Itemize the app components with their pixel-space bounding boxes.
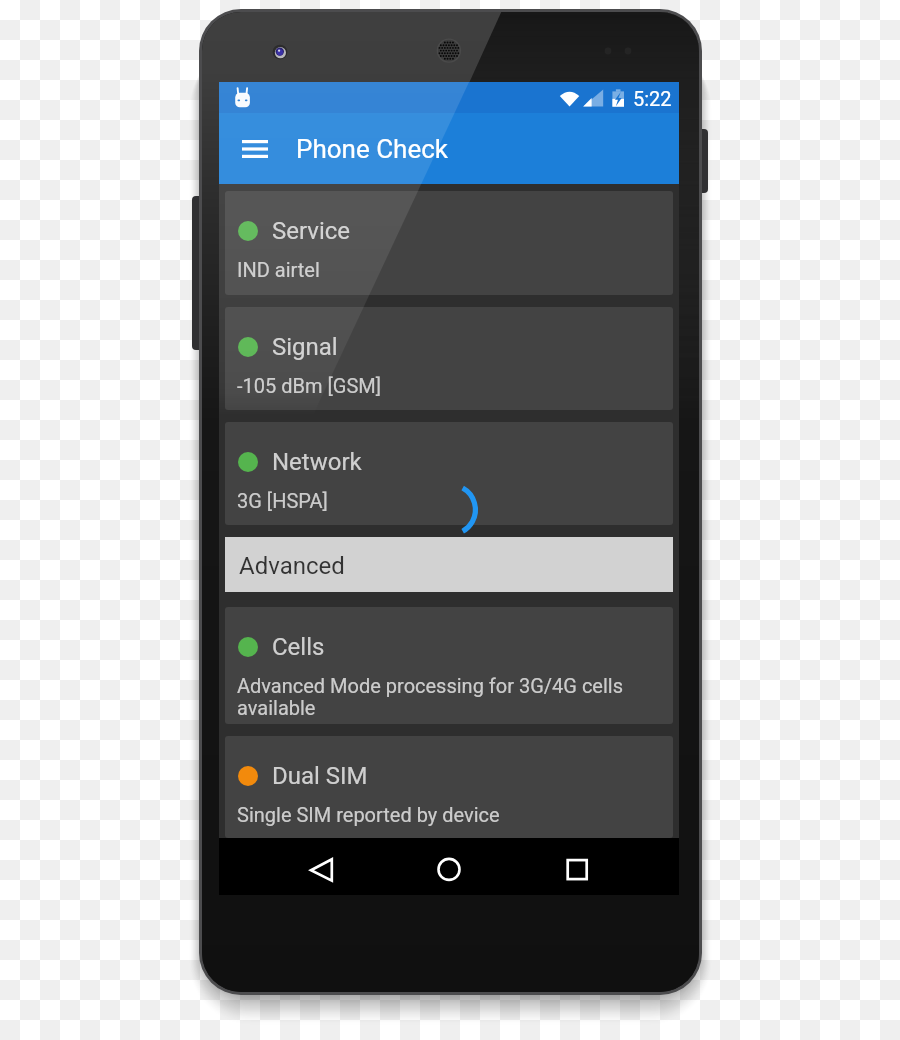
staticText: Phone Check: [296, 134, 448, 164]
staticText: Advanced Mode processing for 3G/4G cells…: [237, 674, 663, 720]
staticText: -105 dBm [GSM]: [237, 374, 663, 397]
button[interactable]: Back: [287, 838, 345, 895]
staticText: 5:22: [633, 87, 672, 110]
staticText: Service: [272, 217, 351, 245]
staticText: Advanced: [239, 552, 345, 580]
staticText: Network: [272, 448, 362, 476]
button[interactable]: Recent apps: [549, 838, 607, 895]
button[interactable]: Home: [419, 838, 477, 895]
button[interactable]: Advanced: [225, 537, 673, 592]
staticText: Signal: [272, 333, 338, 361]
staticText: Cells: [272, 633, 325, 661]
button[interactable]: Signal: [225, 307, 673, 410]
staticText: 3G [HSPA]: [237, 489, 663, 512]
staticText: Dual SIM: [272, 762, 368, 790]
staticText: IND airtel: [237, 258, 663, 281]
staticText: Single SIM reported by device: [237, 803, 663, 826]
button[interactable]: Open navigation menu: [232, 126, 278, 172]
button[interactable]: Service: [225, 191, 673, 295]
button[interactable]: Network: [225, 422, 673, 525]
button[interactable]: Dual SIM: [225, 736, 673, 838]
button[interactable]: Cells: [225, 607, 673, 724]
